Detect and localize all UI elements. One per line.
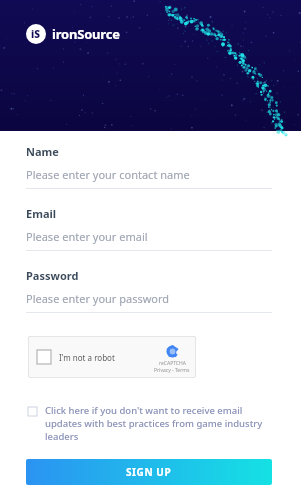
button[interactable]: Name bbox=[26, 144, 272, 189]
other: I'm not a robot checkbox bbox=[37, 350, 51, 364]
staticText: Password bbox=[26, 268, 79, 283]
staticText: Please enter your password bbox=[26, 291, 170, 306]
button[interactable]: I'm not a robot checkbox bbox=[28, 336, 196, 378]
staticText: ironSource bbox=[52, 25, 120, 43]
staticText: reCAPTCHA bbox=[159, 360, 186, 367]
button[interactable]: SIGN UP bbox=[26, 459, 272, 485]
staticText: Please enter your contact name bbox=[26, 167, 190, 182]
button[interactable]: ironSource home bbox=[26, 24, 120, 44]
staticText: Privacy - Terms bbox=[154, 367, 190, 374]
button[interactable]: Click here if you don't want to receive … bbox=[26, 404, 272, 443]
staticText: Email bbox=[26, 206, 57, 221]
staticText: SIGN UP bbox=[126, 465, 172, 479]
button[interactable]: Password bbox=[26, 268, 272, 313]
staticText: Please enter your email bbox=[26, 229, 148, 244]
staticText: iS bbox=[31, 27, 41, 41]
staticText: Name bbox=[26, 144, 59, 159]
staticText: I'm not a robot bbox=[59, 352, 115, 363]
staticText: Click here if you don't want to receive … bbox=[45, 404, 272, 443]
button[interactable]: Email bbox=[26, 206, 272, 251]
